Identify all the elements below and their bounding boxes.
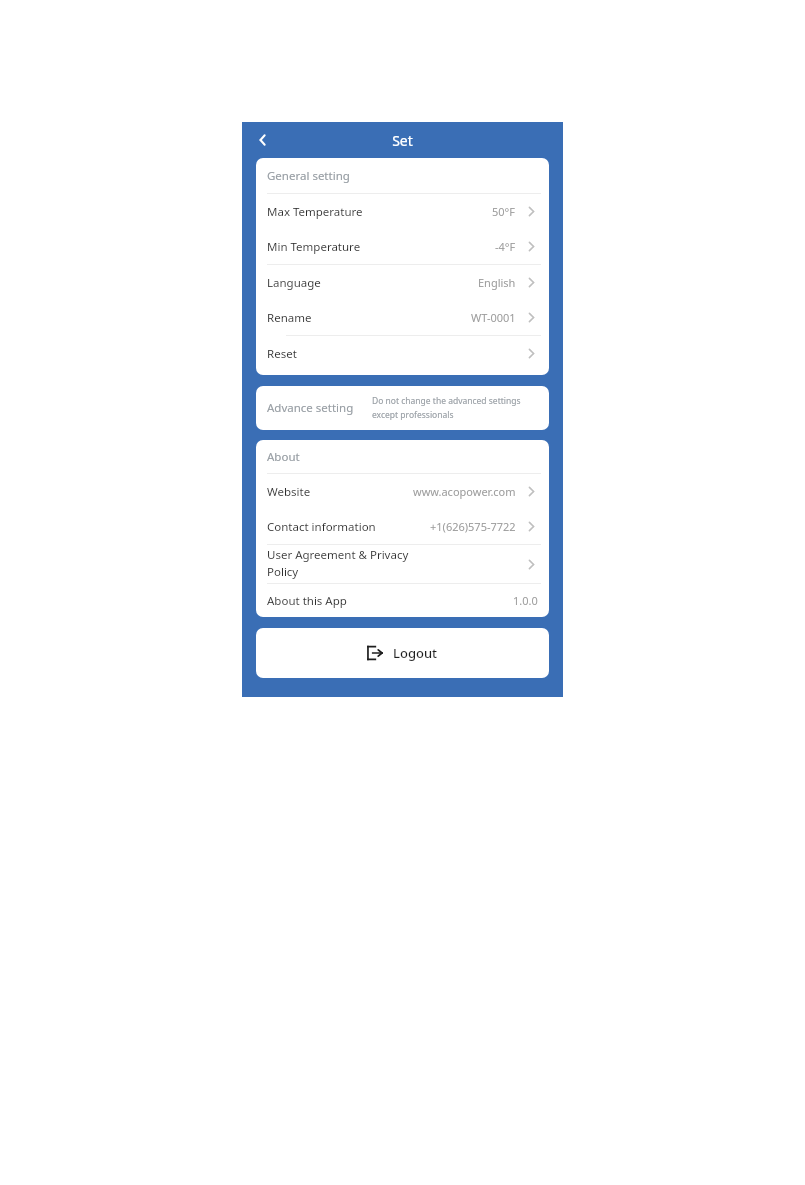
staticText: Policy <box>267 564 299 580</box>
button[interactable]: Advance setting <box>256 386 549 430</box>
button[interactable]: Logout <box>256 628 549 678</box>
staticText: -4°F <box>495 239 516 254</box>
staticText: English <box>478 275 516 290</box>
staticText: +1(626)575-7722 <box>430 519 516 534</box>
staticText: About <box>267 449 300 465</box>
staticText: 1.0.0 <box>513 593 538 608</box>
staticText: Max Temperature <box>267 204 492 220</box>
staticText: Logout <box>393 644 438 662</box>
staticText: www.acopower.com <box>413 484 516 499</box>
staticText: Do not change the advanced settings <box>372 395 521 407</box>
button[interactable]: Back <box>250 127 276 153</box>
staticText: About this App <box>267 593 513 609</box>
button[interactable]: Contact information <box>256 509 549 544</box>
button[interactable]: About this App <box>256 584 549 617</box>
staticText: except professionals <box>372 409 454 421</box>
staticText: Language <box>267 275 478 291</box>
button[interactable]: Language <box>256 265 549 300</box>
staticText: Reset <box>267 346 516 362</box>
staticText: Min Temperature <box>267 239 495 255</box>
button[interactable]: Reset <box>256 336 549 371</box>
button[interactable]: Max Temperature <box>256 194 549 229</box>
staticText: Contact information <box>267 519 430 535</box>
button[interactable]: Min Temperature <box>256 229 549 264</box>
staticText: WT-0001 <box>471 310 516 325</box>
staticText: General setting <box>267 168 350 184</box>
staticText: 50°F <box>492 204 516 219</box>
staticText: Set <box>392 131 413 150</box>
button[interactable]: User Agreement & Privacy <box>256 545 549 583</box>
staticText: Advance setting <box>267 400 354 416</box>
button[interactable]: Website <box>256 474 549 509</box>
staticText: User Agreement & Privacy <box>267 547 409 563</box>
staticText: Rename <box>267 310 471 326</box>
staticText: Website <box>267 484 413 500</box>
button[interactable]: Rename <box>256 300 549 335</box>
